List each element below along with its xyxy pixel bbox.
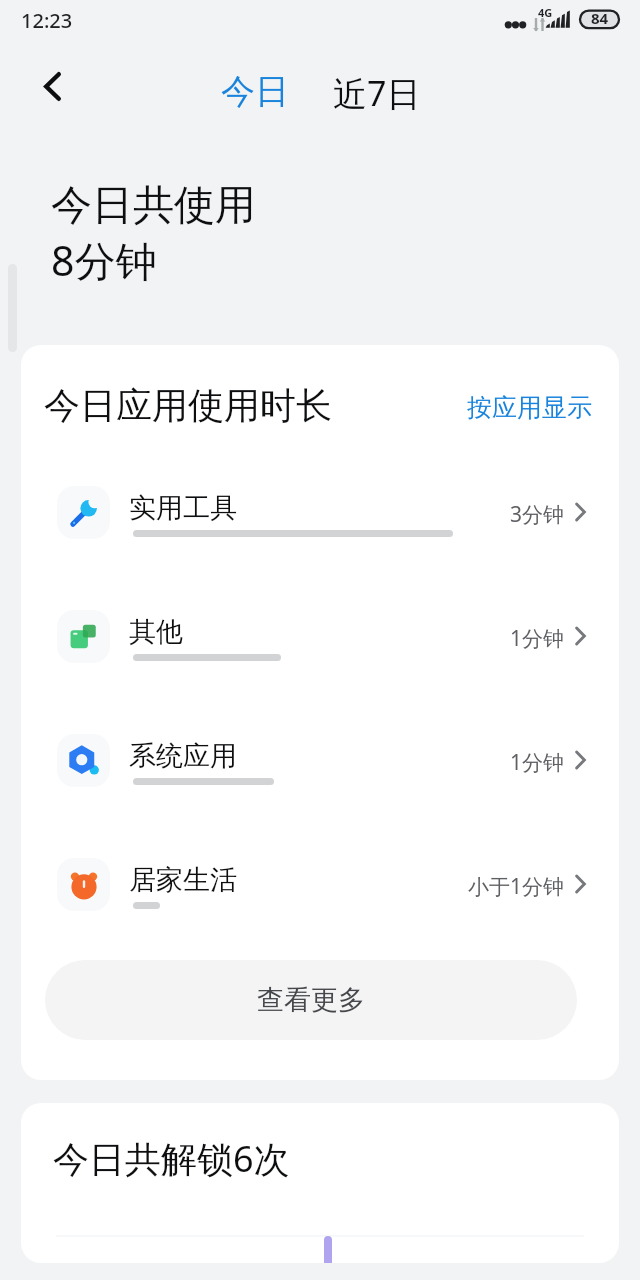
button[interactable]: 近7日 bbox=[326, 67, 428, 119]
staticText: 3分钟 bbox=[510, 500, 565, 529]
button[interactable]: 其他 bbox=[21, 574, 619, 698]
staticText: 8分钟 bbox=[51, 232, 157, 288]
button[interactable]: 按应用显示 bbox=[462, 388, 597, 427]
button[interactable]: 查看更多 bbox=[45, 960, 577, 1040]
staticText: 查看更多 bbox=[257, 983, 365, 1017]
button[interactable]: 今日 bbox=[214, 67, 296, 116]
staticText: 今日共解锁6次 bbox=[53, 1134, 290, 1183]
staticText: 居家生活 bbox=[129, 863, 237, 897]
staticText: 今日共使用 bbox=[51, 180, 256, 232]
button[interactable]: 实用工具 bbox=[21, 450, 619, 574]
button[interactable]: Back bbox=[28, 62, 76, 110]
staticText: 4G bbox=[538, 5, 553, 20]
staticText: 今日应用使用时长 bbox=[44, 383, 332, 428]
staticText: 1分钟 bbox=[510, 624, 565, 653]
staticText: 系统应用 bbox=[129, 739, 237, 773]
staticText: 按应用显示 bbox=[467, 392, 592, 423]
button[interactable]: 系统应用 bbox=[21, 698, 619, 822]
staticText: 近7日 bbox=[333, 70, 421, 116]
staticText: 今日 bbox=[221, 70, 289, 113]
staticText: 其他 bbox=[129, 615, 183, 649]
staticText: 84 bbox=[591, 8, 609, 28]
staticText: 小于1分钟 bbox=[468, 872, 565, 901]
staticText: 12:23 bbox=[21, 7, 73, 34]
button[interactable]: 居家生活 bbox=[21, 822, 619, 946]
staticText: 1分钟 bbox=[510, 748, 565, 777]
staticText: 实用工具 bbox=[129, 491, 237, 525]
